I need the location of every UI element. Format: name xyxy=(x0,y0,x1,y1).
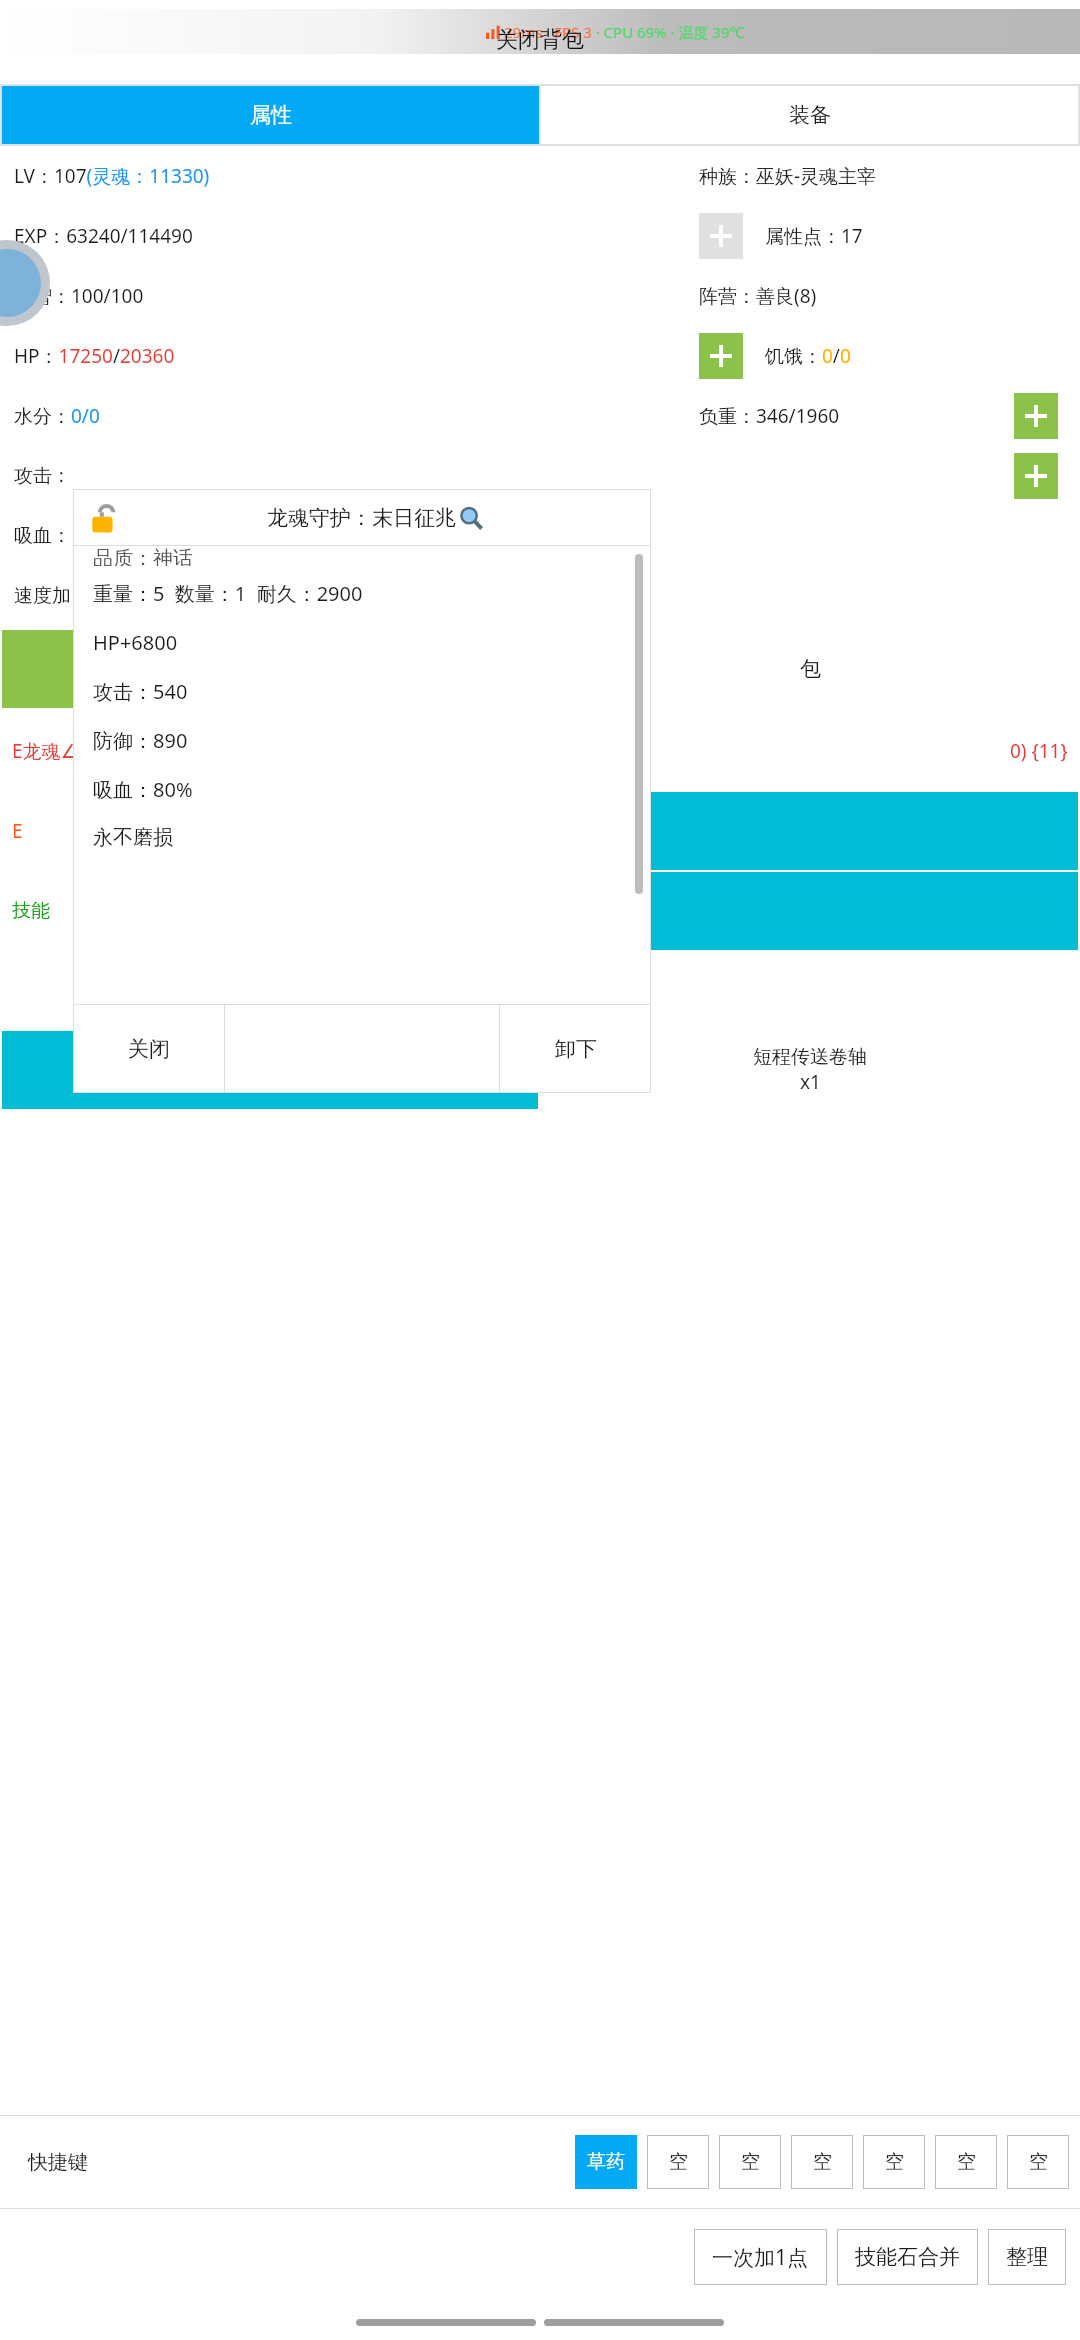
button[interactable]: 技能 xyxy=(2,872,538,950)
button[interactable]: 卸下 xyxy=(500,1005,651,1093)
staticText: 重量：5 数量：1 耐久：2900 xyxy=(93,580,363,607)
button[interactable]: 全 xyxy=(2,630,538,708)
staticText: 关闭背包 xyxy=(496,26,584,54)
button[interactable]: Add point xyxy=(699,213,743,259)
staticText: 快捷键 xyxy=(28,2150,88,2175)
staticText: 理智：100/100 xyxy=(14,283,144,309)
staticText: 阵营：善良(8) xyxy=(699,283,817,309)
staticText: E xyxy=(12,818,23,844)
button[interactable]: 空 xyxy=(1007,2135,1069,2189)
button[interactable]: 整理 xyxy=(988,2229,1066,2285)
staticText: 整理 xyxy=(1006,2244,1048,2270)
staticText: 属性点：17 xyxy=(765,223,863,249)
button[interactable]: 空 xyxy=(647,2135,709,2189)
button[interactable] xyxy=(2,952,538,1030)
button[interactable]: Add point xyxy=(1014,393,1058,439)
staticText: 空 xyxy=(1029,2150,1048,2174)
button[interactable]: 短程传送卷轴 xyxy=(542,1031,1078,1109)
button[interactable]: 0) {11} xyxy=(542,712,1078,790)
staticText: 攻击：540 xyxy=(93,678,188,705)
button[interactable]: 空 xyxy=(719,2135,781,2189)
button[interactable] xyxy=(225,1005,499,1093)
button[interactable] xyxy=(542,872,1078,950)
button[interactable]: 草药 xyxy=(575,2135,637,2189)
staticText: 空 xyxy=(957,2150,976,2174)
staticText: EXP：63240/114490 xyxy=(14,223,193,249)
staticText: 龙魂守护：末日征兆 xyxy=(267,505,456,531)
staticText: 空 xyxy=(741,2150,760,2174)
staticText: 空 xyxy=(669,2150,688,2174)
staticText: 攻击： xyxy=(14,464,71,488)
staticText: 技能石合并 xyxy=(855,2244,960,2270)
button[interactable]: E龙魂∠ xyxy=(2,712,538,790)
staticText: 短程传送卷轴 xyxy=(753,1045,867,1069)
staticText: 永不磨损 xyxy=(93,825,173,850)
staticText: 种族：巫妖-灵魂主宰 xyxy=(699,163,877,189)
staticText: HP：17250/20360 xyxy=(14,343,175,369)
button[interactable]: 关闭 xyxy=(73,1005,224,1093)
button[interactable]: 空 xyxy=(863,2135,925,2189)
staticText: 吸血：80% xyxy=(93,776,193,803)
button[interactable]: 技能石合并 xyxy=(837,2229,978,2285)
button[interactable] xyxy=(542,792,1078,870)
staticText: x1 xyxy=(800,1069,821,1095)
button[interactable]: 属性 xyxy=(2,86,539,144)
staticText: 包 xyxy=(800,656,821,682)
button[interactable]: 空 xyxy=(935,2135,997,2189)
staticText: 速度加 xyxy=(14,584,71,608)
button[interactable]: 一次加1点 xyxy=(694,2229,827,2285)
staticText: 防御：890 xyxy=(93,727,188,754)
staticText: 水分：0/0 xyxy=(14,403,100,429)
staticText: E龙魂∠ xyxy=(12,738,78,764)
button[interactable]: Add point xyxy=(699,333,743,379)
staticText: 一次加1点 xyxy=(712,2243,809,2272)
button[interactable]: Add point xyxy=(1014,453,1058,499)
staticText: 饥饿：0/0 xyxy=(765,343,851,369)
staticText: x84 xyxy=(254,1069,286,1095)
staticText: 29ms · FPS 3 · CPU 69% · 温度 39℃ xyxy=(504,22,745,42)
staticText: 品质：神话 xyxy=(93,546,193,566)
staticText: HP+6800 xyxy=(93,629,178,656)
button[interactable]: 次元钥匙 xyxy=(2,1031,538,1109)
button[interactable]: 空 xyxy=(791,2135,853,2189)
staticText: 负重：346/1960 xyxy=(699,403,840,429)
staticText: 装备 xyxy=(789,102,831,128)
staticText: 属性 xyxy=(250,102,292,128)
staticText: 0) {11} xyxy=(1010,738,1068,764)
staticText: 卸下 xyxy=(555,1036,597,1062)
staticText: 技能 xyxy=(12,899,50,923)
staticText: 空 xyxy=(813,2150,832,2174)
staticText: 关闭 xyxy=(128,1036,170,1062)
staticText: 草药 xyxy=(587,2150,625,2174)
staticText: LV：107(灵魂：11330) xyxy=(14,163,210,189)
button[interactable]: 包 xyxy=(542,630,1078,708)
button[interactable]: E xyxy=(2,792,538,870)
staticText: 空 xyxy=(885,2150,904,2174)
staticText: 吸血： xyxy=(14,524,71,548)
button[interactable]: 装备 xyxy=(541,86,1078,144)
